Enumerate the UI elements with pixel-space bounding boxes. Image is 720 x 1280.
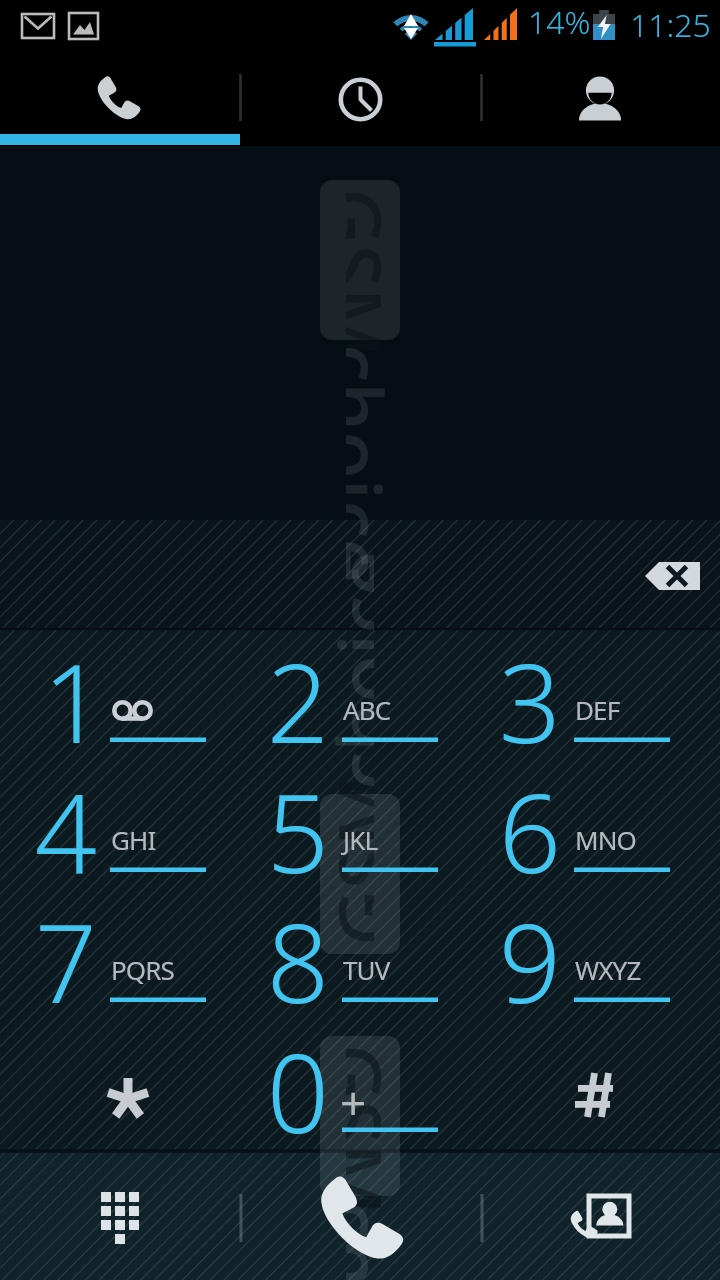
button[interactable] [240,760,480,890]
button[interactable] [240,890,480,1020]
button[interactable] [480,1020,720,1150]
button[interactable]: Phone [0,57,240,139]
staticText: 2 [249,626,329,774]
staticText: 14% [528,0,591,44]
staticText: 11:25 [630,3,711,47]
button[interactable] [480,630,720,760]
staticText: GSM [346,188,408,360]
staticText: 5 [249,756,329,904]
staticText: 6 [481,756,561,904]
staticText: MNO [575,822,636,857]
staticText: choice [312,551,374,790]
staticText: 7 [17,886,97,1034]
button[interactable] [0,890,240,1020]
staticText: GHI [111,822,156,857]
button[interactable] [240,630,480,760]
staticText: TUV [343,952,390,987]
staticText: 1 [25,626,105,774]
staticText: GSM [312,774,374,946]
staticText: ABC [343,692,391,727]
button[interactable] [480,760,720,890]
staticText: 4 [17,756,97,904]
button[interactable]: People [480,1152,720,1280]
button[interactable] [240,1020,480,1150]
button[interactable]: Backspace [621,548,720,604]
staticText: DEF [575,692,620,727]
button[interactable]: Call history [240,57,480,139]
staticText: GSM [346,1044,408,1216]
button[interactable] [0,760,240,890]
button[interactable]: Call [240,1152,480,1280]
staticText: 0 [249,1016,329,1164]
button[interactable]: Dialpad [0,1152,240,1280]
staticText: WXYZ [575,952,641,987]
staticText: JKL [343,822,378,857]
staticText: 3 [481,626,561,774]
staticText: 8 [249,886,329,1034]
staticText: PQRS [111,952,174,987]
button[interactable] [0,630,240,760]
staticText: + [340,1071,367,1134]
button[interactable] [480,890,720,1020]
staticText: choice [346,1200,408,1280]
staticText: choice [346,344,408,583]
button[interactable]: Contacts [480,57,720,139]
button[interactable] [0,1020,240,1150]
staticText: 9 [481,886,561,1034]
